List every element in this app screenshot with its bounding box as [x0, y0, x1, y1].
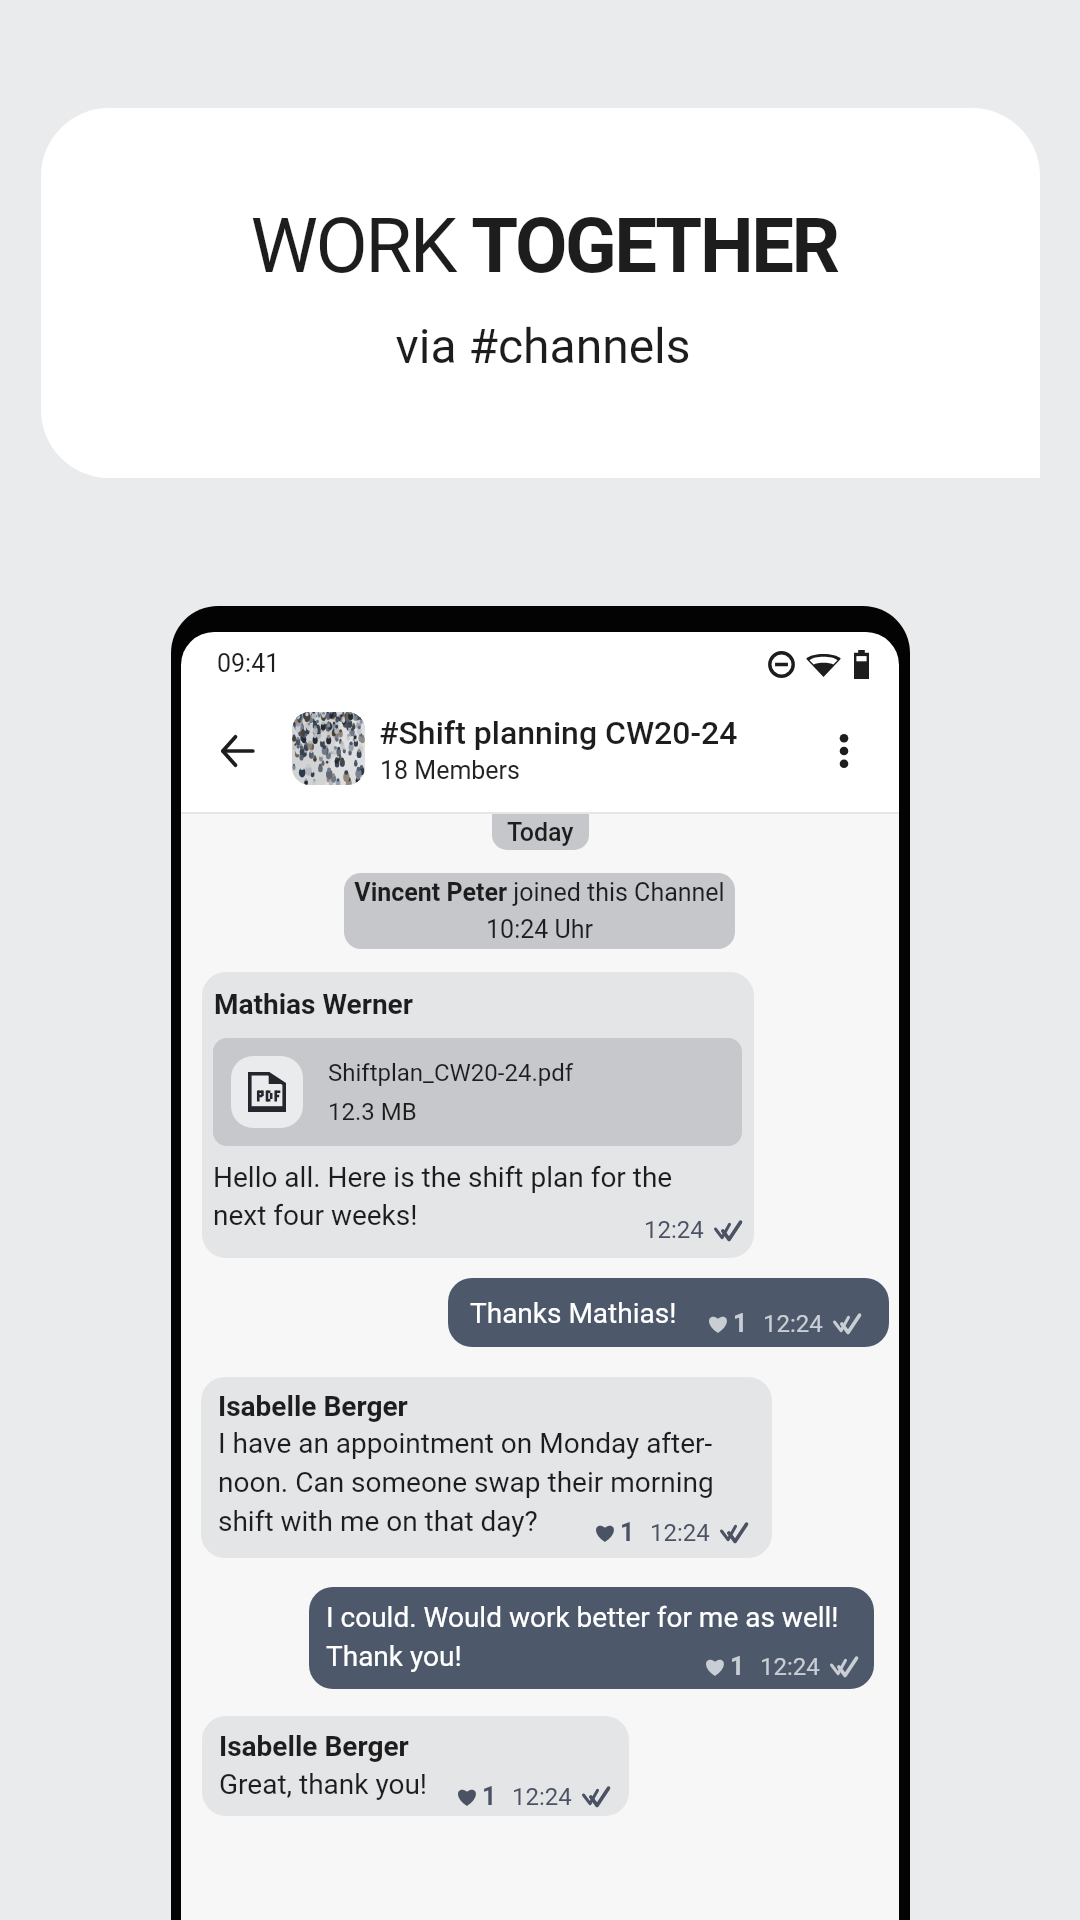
staticText: Shiftplan_CW20-24.pdf	[328, 1059, 574, 1087]
staticText: Great, thank you!	[219, 1768, 428, 1801]
staticText: 12:24	[763, 1310, 823, 1338]
staticText: 18 Members	[380, 756, 520, 785]
button[interactable]: Mathias Werner	[202, 972, 754, 1258]
staticText: 12.3 MB	[328, 1098, 417, 1126]
staticText: Thanks Mathias!	[470, 1297, 677, 1330]
staticText: 09:41	[217, 649, 280, 678]
button[interactable]: I could. Would work better for me as wel…	[309, 1587, 874, 1689]
button[interactable]: Thanks Mathias!	[448, 1278, 889, 1347]
staticText: 1	[482, 1782, 497, 1811]
button[interactable]: Isabelle Berger	[201, 1377, 772, 1558]
staticText: 1	[730, 1652, 745, 1681]
staticText: 12:24	[650, 1519, 710, 1547]
staticText: Mathias Werner	[214, 988, 413, 1021]
staticText: Hello all. Here is the shift plan for th…	[213, 1161, 673, 1232]
staticText: Isabelle Berger	[218, 1390, 408, 1423]
staticText: I have an appointment on Monday after- n…	[218, 1427, 714, 1538]
staticText: 1	[733, 1309, 748, 1338]
staticText: Vincent Peter joined this Channel 10:24 …	[354, 878, 725, 944]
staticText: I could. Would work better for me as wel…	[326, 1601, 839, 1673]
button[interactable]: More options	[814, 721, 874, 781]
staticText: 1	[620, 1518, 635, 1547]
staticText: 12:24	[512, 1783, 572, 1811]
staticText: via #channels	[395, 318, 691, 374]
button[interactable]: Today	[492, 814, 589, 850]
button[interactable]: Shiftplan_CW20-24.pdf	[213, 1038, 742, 1146]
staticText: 12:24	[644, 1216, 704, 1244]
button[interactable]: Isabelle Berger	[202, 1716, 629, 1816]
button[interactable]: Back	[207, 721, 267, 781]
staticText: #Shift planning CW20-24	[379, 714, 738, 752]
staticText: WORK TOGETHER	[250, 201, 838, 290]
staticText: Today	[507, 818, 574, 847]
staticText: Isabelle Berger	[219, 1730, 409, 1763]
staticText: 12:24	[760, 1653, 820, 1681]
